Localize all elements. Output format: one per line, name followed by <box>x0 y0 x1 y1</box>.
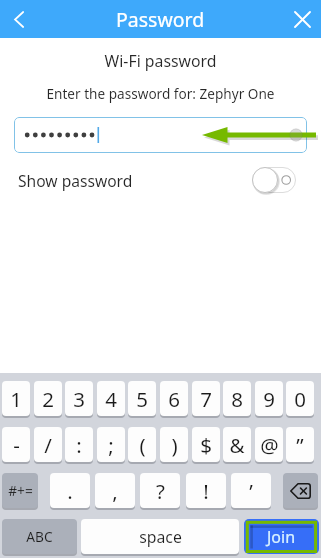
staticText: #+= <box>8 481 33 500</box>
staticText: Enter the password for: Zephyr One <box>0 84 321 103</box>
button[interactable]: 8 <box>223 381 251 416</box>
button[interactable]: 7 <box>192 381 220 416</box>
button[interactable] <box>283 473 318 508</box>
staticText: ) <box>171 431 178 459</box>
staticText: 5 <box>136 385 148 413</box>
staticText: Show password <box>18 170 133 191</box>
button[interactable]: @ <box>255 427 283 462</box>
button[interactable]: ? <box>140 473 180 508</box>
staticText: $ <box>200 431 212 459</box>
button[interactable]: ( <box>128 427 156 462</box>
staticText: / <box>44 431 52 459</box>
staticText: : <box>76 431 82 459</box>
staticText: 1 <box>10 385 22 413</box>
button[interactable]: space <box>81 519 239 554</box>
button[interactable]: ABC <box>2 519 77 554</box>
staticText: ABC <box>26 527 53 546</box>
staticText: , <box>112 477 118 505</box>
staticText: 2 <box>42 385 54 413</box>
staticText: ; <box>108 431 114 459</box>
button[interactable] <box>14 117 307 153</box>
staticText: Join <box>267 526 296 548</box>
staticText: 0 <box>294 385 306 413</box>
button[interactable]: Join <box>244 519 319 554</box>
button[interactable]: Close <box>283 0 321 38</box>
staticText: 4 <box>105 385 117 413</box>
button[interactable]: ! <box>186 473 226 508</box>
staticText: 9 <box>263 385 275 413</box>
button[interactable]: - <box>2 427 30 462</box>
staticText: - <box>13 431 20 459</box>
button[interactable]: Show password <box>18 165 296 195</box>
staticText: ( <box>139 431 146 459</box>
staticText: ’ <box>249 477 253 505</box>
button[interactable]: $ <box>192 427 220 462</box>
button[interactable]: ’ <box>231 473 271 508</box>
button[interactable]: 2 <box>34 381 62 416</box>
staticText: Password <box>116 6 205 33</box>
button[interactable]: 5 <box>128 381 156 416</box>
staticText: 8 <box>231 385 243 413</box>
button[interactable]: 4 <box>97 381 125 416</box>
staticText: & <box>229 431 245 459</box>
staticText: Wi-Fi password <box>0 50 321 72</box>
staticText: 3 <box>73 385 85 413</box>
staticText: @ <box>260 431 279 459</box>
staticText: . <box>67 477 73 505</box>
staticText: ” <box>296 431 304 459</box>
button[interactable]: 6 <box>160 381 188 416</box>
staticText: 7 <box>200 385 212 413</box>
button[interactable]: 3 <box>65 381 93 416</box>
button[interactable]: / <box>34 427 62 462</box>
button[interactable]: 0 <box>286 381 314 416</box>
staticText: 6 <box>168 385 180 413</box>
staticText: ? <box>156 477 165 505</box>
button[interactable]: ; <box>97 427 125 462</box>
staticText: ! <box>203 477 209 505</box>
button[interactable]: : <box>65 427 93 462</box>
button[interactable]: & <box>223 427 251 462</box>
button[interactable]: 1 <box>2 381 30 416</box>
button[interactable]: Back <box>0 0 38 38</box>
button[interactable]: 9 <box>255 381 283 416</box>
button[interactable]: , <box>95 473 135 508</box>
button[interactable]: ) <box>160 427 188 462</box>
button[interactable]: #+= <box>2 473 38 508</box>
staticText: space <box>139 526 182 548</box>
button[interactable]: . <box>50 473 90 508</box>
button[interactable]: ” <box>286 427 314 462</box>
